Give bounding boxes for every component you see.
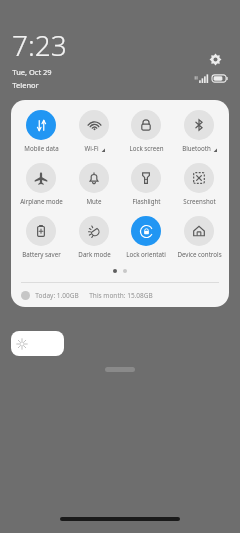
staticText: Dark mode [78,250,111,258]
button[interactable]: Battery saver [15,215,67,259]
button[interactable]: Brightness [11,331,64,356]
staticText: Telenor [12,80,39,90]
staticText: 7:23 [12,26,67,64]
staticText: Battery saver [22,250,61,258]
button[interactable]: Mobile data [15,109,67,153]
button[interactable]: Bluetooth [173,109,225,153]
staticText: Today: 1.00GB [35,291,79,300]
staticText: Lock screen [129,144,164,152]
staticText: Flashlight [132,197,161,205]
button[interactable]: Airplane mode [15,162,67,206]
staticText: Tue, Oct 29 [12,67,52,77]
button[interactable]: Lock orientati [120,215,172,259]
button[interactable]: Dark mode [68,215,120,259]
button[interactable]: Wi-Fi [68,109,120,153]
staticText: Lock orientati [126,250,166,258]
button[interactable]: Flashlight [120,162,172,206]
button[interactable]: Lock screen [120,109,172,153]
staticText: Screenshot [183,197,216,205]
staticText: Mute [86,197,102,205]
staticText: Airplane mode [20,197,63,205]
button[interactable]: Mute [68,162,120,206]
button[interactable]: Settings [204,48,226,70]
staticText: Wi-Fi [84,144,99,152]
staticText: Bluetooth [182,144,211,152]
button[interactable]: Today: 1.00GB [11,283,229,307]
button[interactable]: Screenshot [173,162,225,206]
button[interactable]: Device controls [173,215,225,259]
staticText: This month: 15.08GB [89,291,153,300]
staticText: Mobile data [24,144,59,152]
staticText: Device controls [177,250,222,258]
